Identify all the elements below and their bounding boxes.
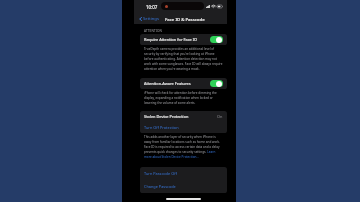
staticText: ATTENTION (144, 29, 162, 33)
staticText: Face ID & Passcode (165, 16, 205, 22)
staticText: Turn Off Protection (144, 125, 179, 130)
button[interactable]: Attention-Aware Features (140, 78, 227, 89)
button[interactable]: Turn Off Protection (140, 122, 227, 133)
staticText: 10:07 (146, 4, 158, 10)
staticText: Attention-Aware Features (144, 81, 191, 86)
staticText: On (217, 114, 223, 119)
staticText: This adds another layer of security when… (144, 135, 223, 159)
button[interactable]: Require Attention for Face ID (140, 34, 227, 45)
staticText: iPhone will check for attention before d… (144, 91, 223, 105)
staticText: Change Passcode (144, 184, 176, 189)
staticText: TrueDepth camera provides an additional … (144, 47, 223, 71)
button[interactable]: Turn Passcode Off (140, 167, 227, 180)
button[interactable]: Change Passcode (140, 180, 227, 193)
staticText: Stolen Device Protection (144, 114, 189, 119)
button[interactable]: Stolen Device Protection (140, 111, 227, 122)
staticText: Require Attention for Face ID (144, 37, 197, 42)
staticText: Settings (143, 16, 159, 22)
button[interactable]: Settings (139, 16, 159, 22)
staticText: Turn Passcode Off (144, 171, 177, 176)
